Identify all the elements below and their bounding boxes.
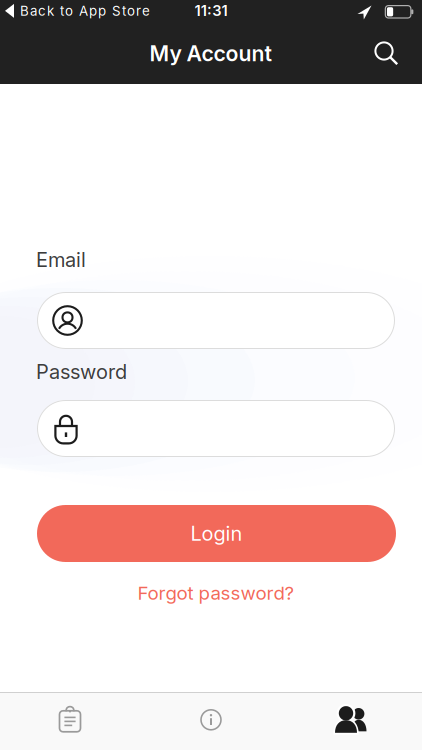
- button[interactable]: [10, 695, 130, 745]
- staticText: Password: [36, 360, 127, 384]
- button[interactable]: [37, 292, 395, 349]
- staticText: Forgot password?: [137, 582, 294, 604]
- button[interactable]: Forgot password?: [5, 582, 422, 604]
- staticText: My Account: [149, 41, 272, 66]
- button[interactable]: [37, 400, 395, 457]
- button[interactable]: [290, 695, 410, 745]
- button[interactable]: Login: [37, 505, 396, 562]
- button[interactable]: [374, 41, 400, 67]
- button[interactable]: Back to App Store: [5, 3, 150, 19]
- staticText: Login: [190, 522, 242, 545]
- staticText: Back to App Store: [20, 3, 150, 19]
- staticText: 11:31: [194, 2, 228, 19]
- button[interactable]: [151, 695, 271, 745]
- staticText: Email: [36, 248, 86, 272]
